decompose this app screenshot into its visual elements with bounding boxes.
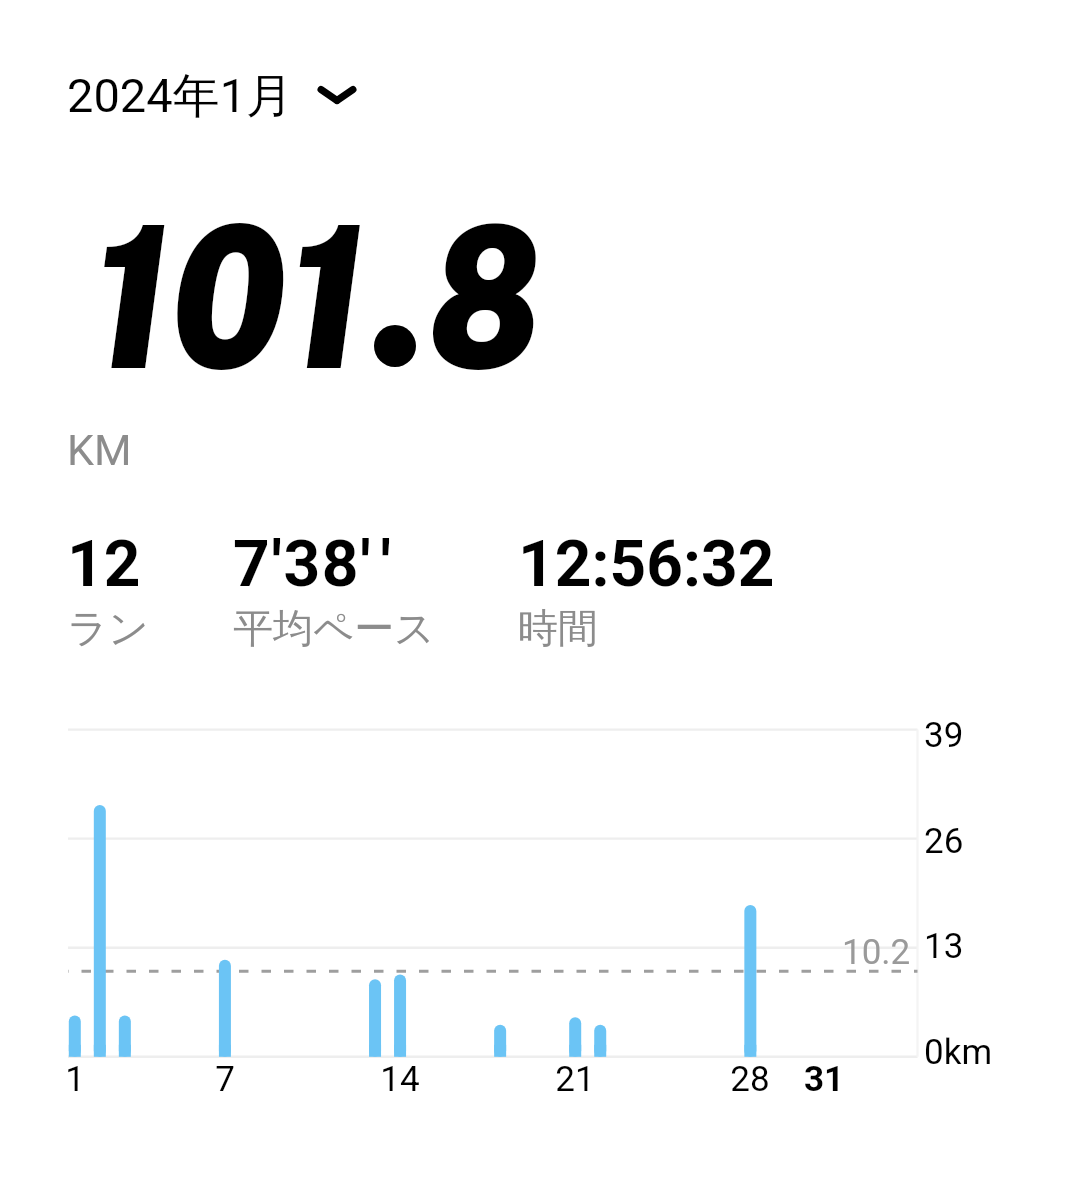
staticText: 39 xyxy=(924,715,964,756)
staticText: 28 xyxy=(700,1059,800,1100)
staticText: 21 xyxy=(525,1059,625,1100)
staticText: 7'38' ' xyxy=(233,527,393,602)
staticText: 31 xyxy=(804,1059,845,1100)
staticText: 0km xyxy=(924,1032,993,1073)
staticText: 2024年1月 xyxy=(67,67,294,126)
staticText: 14 xyxy=(350,1059,450,1100)
button[interactable]: Daily distance chart xyxy=(68,730,918,1105)
button[interactable]: Select month xyxy=(67,67,359,126)
other: Change month xyxy=(315,78,359,112)
staticText: 時間 xyxy=(518,603,598,653)
staticText: 1 xyxy=(25,1059,125,1100)
staticText: KM xyxy=(67,425,132,475)
button[interactable]: 12 xyxy=(67,527,233,653)
staticText: 8 xyxy=(428,180,542,413)
staticText: ラン xyxy=(67,603,149,653)
staticText: 7 xyxy=(175,1059,275,1100)
button[interactable]: 12:56:32 xyxy=(518,527,818,653)
button[interactable]: 7'38' ' xyxy=(233,527,518,653)
staticText: 12 xyxy=(67,527,141,602)
staticText: 101 xyxy=(91,180,365,413)
staticText: 10.2 xyxy=(842,932,911,973)
staticText: 26 xyxy=(924,821,964,862)
staticText: 12:56:32 xyxy=(518,527,775,602)
staticText: 平均ペース xyxy=(233,603,435,653)
staticText: 13 xyxy=(924,926,964,967)
